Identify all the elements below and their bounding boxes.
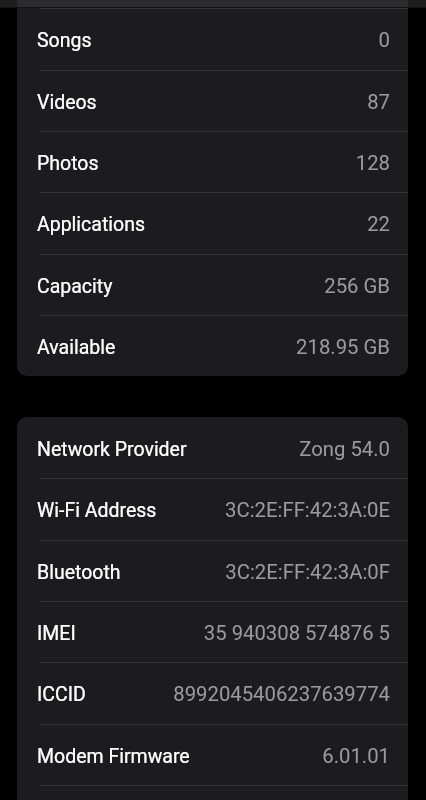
staticText: 3C:2E:FF:42:3A:0E <box>225 498 390 522</box>
staticText: IMEI <box>37 622 76 645</box>
staticText: Songs <box>37 29 92 52</box>
staticText: Zong 54.0 <box>299 437 390 461</box>
staticText: Bluetooth <box>37 561 121 584</box>
button[interactable]: Network Provider <box>17 417 408 478</box>
button[interactable]: Photos <box>17 131 408 192</box>
button[interactable]: Available <box>17 315 408 376</box>
button[interactable]: Modem Firmware <box>17 724 408 785</box>
button[interactable]: Capacity <box>17 254 408 315</box>
staticText: 0 <box>378 28 390 52</box>
staticText: 128 <box>355 151 390 175</box>
staticText: 6.01.01 <box>322 744 390 768</box>
button[interactable]: Applications <box>17 192 408 253</box>
button[interactable]: Wi-Fi Address <box>17 478 408 539</box>
staticText: ICCID <box>37 683 86 706</box>
staticText: 256 GB <box>324 274 390 298</box>
staticText: Photos <box>37 152 99 175</box>
button[interactable]: Bluetooth <box>17 540 408 601</box>
button[interactable]: Songs <box>17 8 408 69</box>
staticText: Available <box>37 336 116 359</box>
button[interactable]: IMEI <box>17 601 408 662</box>
button[interactable]: Videos <box>17 70 408 131</box>
button[interactable]: Documents & Data <box>17 0 408 8</box>
staticText: 35 940308 574876 5 <box>203 621 390 645</box>
staticText: Network Provider <box>37 438 187 461</box>
staticText: Capacity <box>37 275 113 298</box>
staticText: 22 <box>367 212 390 236</box>
staticText: Videos <box>37 91 97 114</box>
staticText: 218.95 GB <box>296 335 390 359</box>
staticText: 87 <box>367 90 390 114</box>
button[interactable]: ICCID <box>17 662 408 723</box>
staticText: 3C:2E:FF:42:3A:0F <box>225 560 390 584</box>
staticText: Applications <box>37 213 145 236</box>
button[interactable]: SEID <box>17 785 408 800</box>
staticText: 8992045406237639774 <box>173 682 390 706</box>
staticText: Wi-Fi Address <box>37 499 157 522</box>
staticText: Modem Firmware <box>37 745 190 768</box>
